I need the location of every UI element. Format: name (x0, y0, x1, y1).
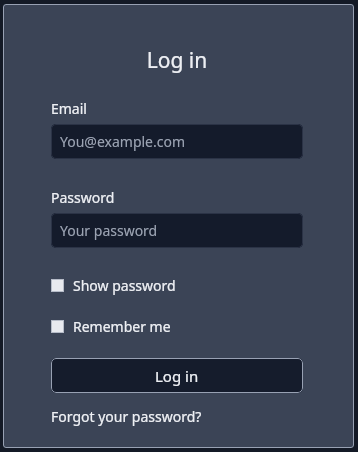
staticText: Password (51, 188, 115, 207)
button[interactable]: Log in (51, 358, 303, 393)
staticText: You@example.com (60, 132, 186, 151)
staticText: Remember me (73, 317, 171, 336)
staticText: Show password (73, 276, 176, 295)
button[interactable]: Remember me (51, 313, 303, 340)
button[interactable]: You@example.com (51, 124, 303, 159)
button[interactable]: Show password (51, 272, 303, 299)
staticText: Forgot your password? (51, 407, 202, 426)
button[interactable]: Forgot your password? (51, 407, 202, 426)
staticText: Email (51, 99, 87, 118)
staticText: Your password (60, 221, 158, 240)
button[interactable]: Your password (51, 213, 303, 248)
staticText: Log in (155, 366, 199, 386)
staticText: Log in (51, 46, 303, 75)
